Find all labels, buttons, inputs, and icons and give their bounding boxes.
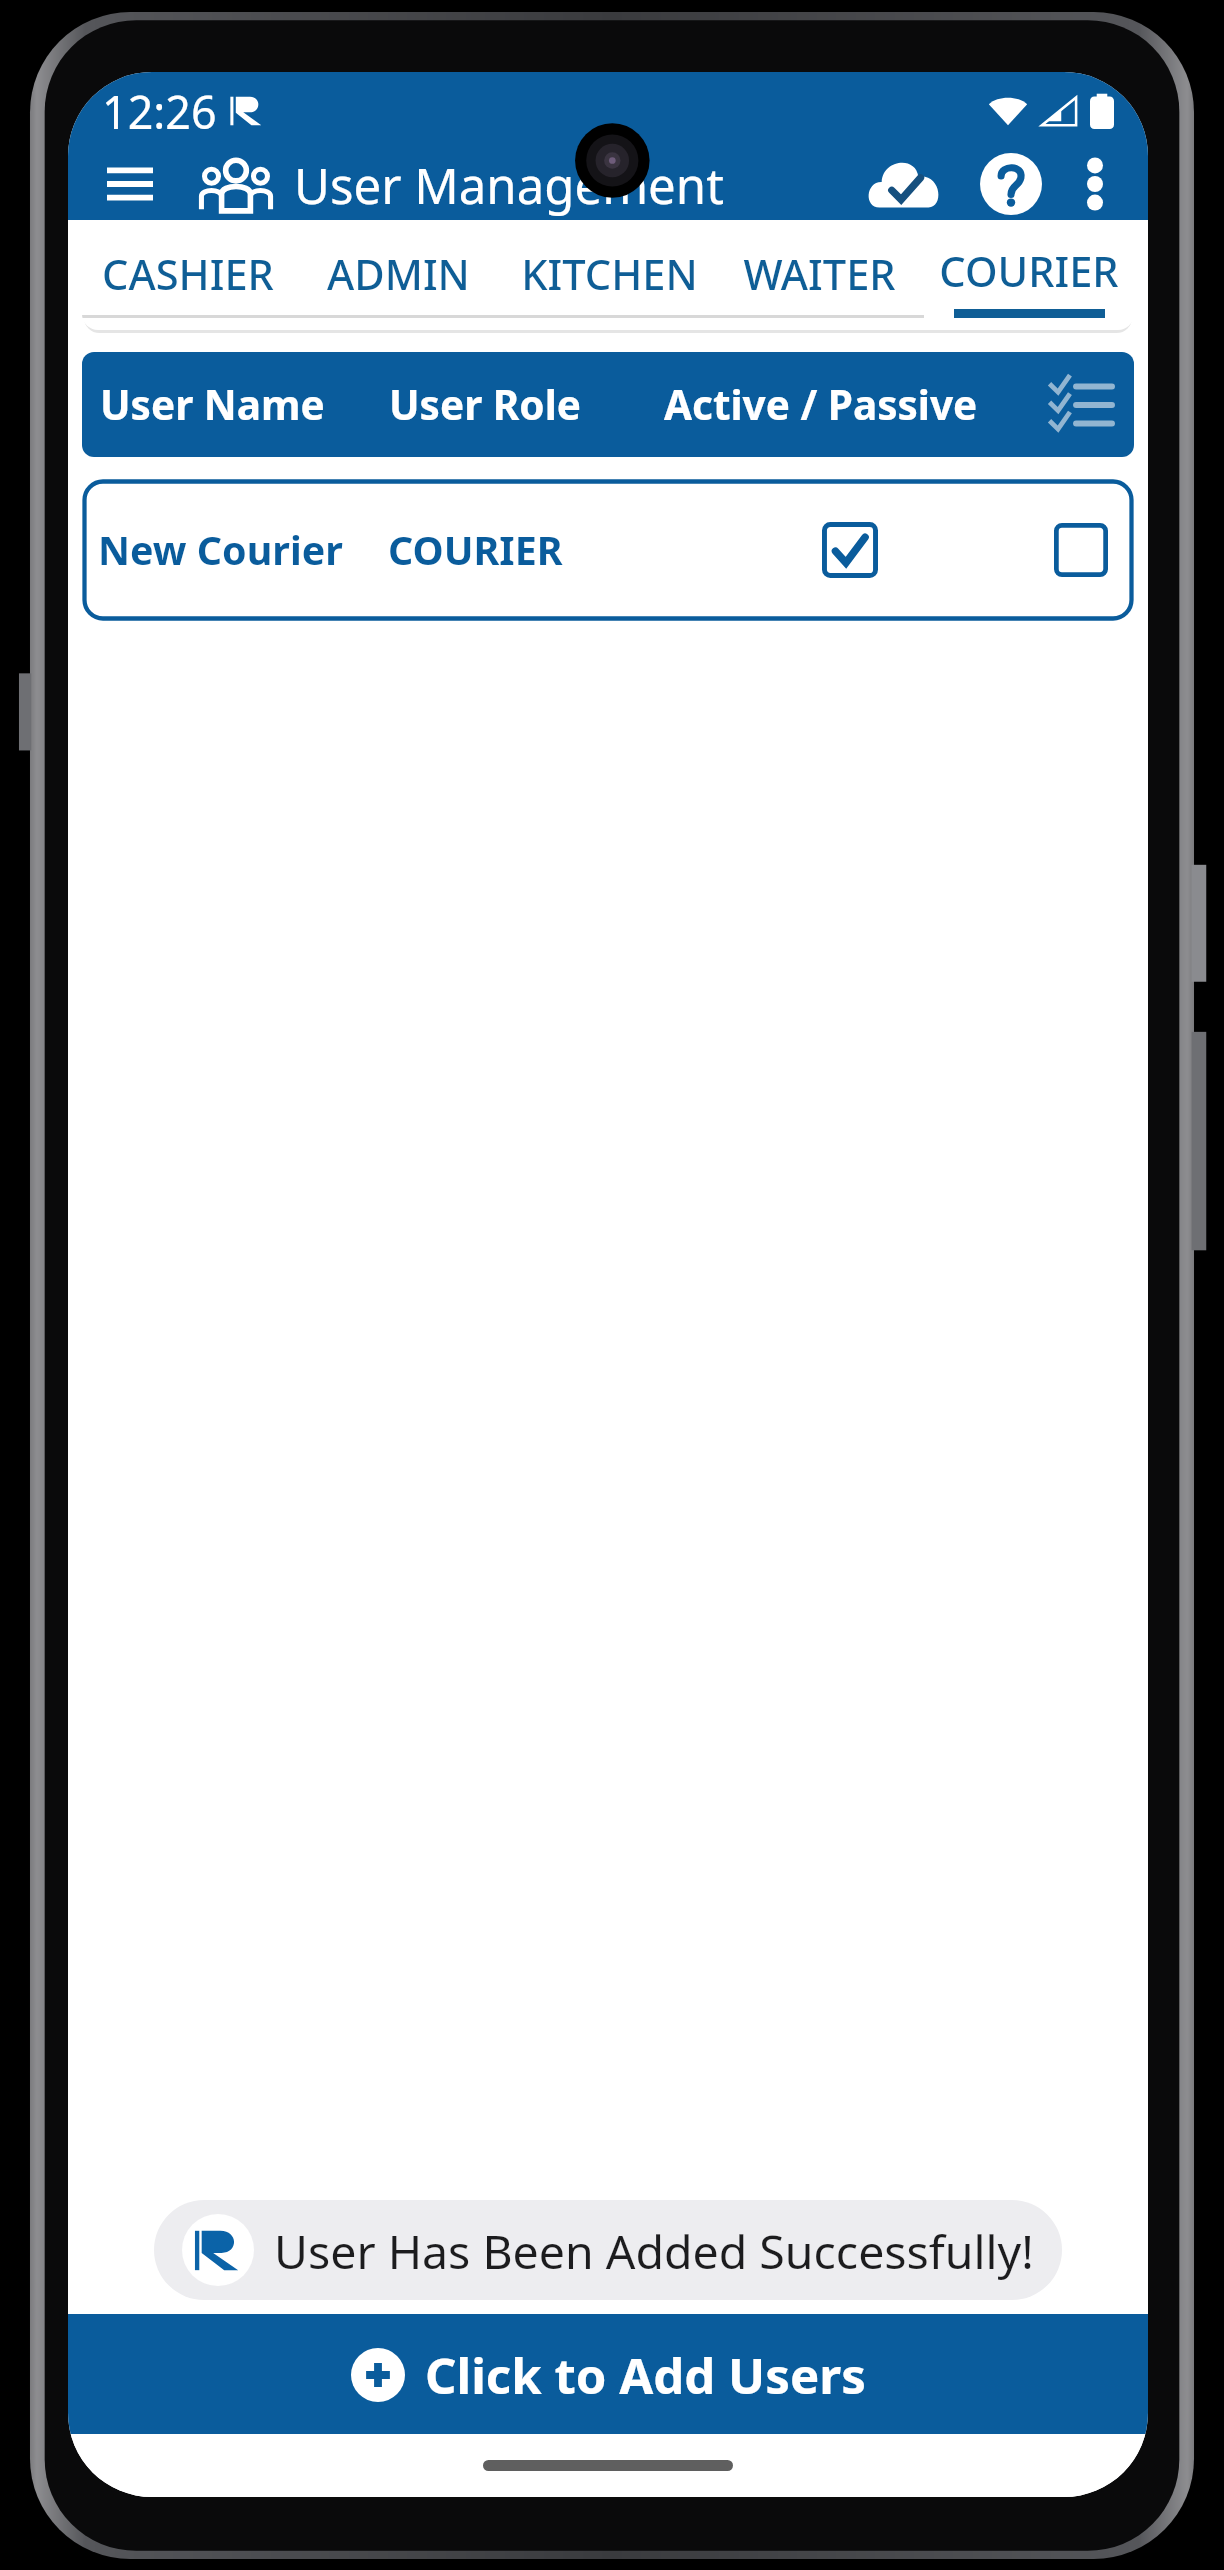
staticText: 12:26 [102, 81, 217, 142]
staticText: New Courier [98, 523, 388, 577]
button[interactable]: Passive [1053, 522, 1109, 578]
staticText: CASHIER [102, 246, 274, 303]
button[interactable]: KITCHEN [504, 234, 714, 330]
staticText: COURIER [939, 243, 1119, 300]
staticText: WAITER [743, 246, 896, 303]
staticText: User Role [389, 377, 664, 432]
button[interactable]: CASHIER [82, 234, 293, 330]
button[interactable]: Help [968, 148, 1054, 220]
staticText: Click to Add Users [425, 2341, 866, 2408]
button[interactable]: New Courier [82, 479, 1134, 621]
button[interactable]: Select all [1036, 352, 1126, 457]
button[interactable]: Sync status [856, 148, 952, 220]
button[interactable]: More options [1060, 148, 1130, 220]
button[interactable]: COURIER [924, 234, 1134, 330]
staticText: User Has Been Added Successfully! [274, 2219, 1034, 2282]
staticText: COURIER [388, 523, 664, 577]
button[interactable]: ADMIN [293, 234, 504, 330]
staticText: User Management [294, 151, 724, 218]
button[interactable]: User Name [82, 352, 1134, 457]
button[interactable]: Active [821, 521, 879, 579]
button[interactable]: WAITER [714, 234, 924, 330]
staticText: Active / Passive [664, 377, 1036, 432]
staticText: ADMIN [327, 246, 470, 303]
button[interactable]: Click to Add Users [68, 2314, 1148, 2434]
staticText: KITCHEN [521, 246, 698, 303]
staticText: User Name [100, 377, 389, 432]
button[interactable]: Open navigation menu [88, 148, 172, 220]
